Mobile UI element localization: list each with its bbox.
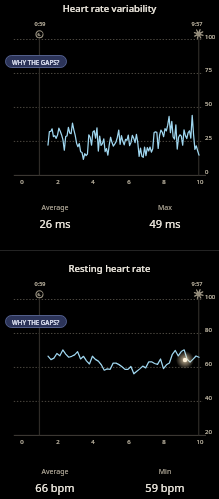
staticText: 26 ms (0, 216, 110, 231)
staticText: 75 (205, 66, 212, 74)
staticText: 25 (205, 134, 212, 142)
staticText: Average (0, 467, 110, 477)
staticText: 50 (205, 100, 212, 108)
staticText: 2 (49, 438, 67, 446)
staticText: 0 (13, 178, 31, 186)
staticText: Heart rate variability (0, 2, 219, 15)
staticText: 20 (205, 428, 212, 436)
staticText: WHY THE GAPS? (12, 318, 60, 326)
staticText: 10 (191, 178, 209, 186)
staticText: Average (0, 203, 110, 213)
staticText: 66 bpm (0, 480, 110, 495)
staticText: 8 (155, 438, 173, 446)
staticText: 8 (155, 178, 173, 186)
staticText: 0:59 (30, 20, 50, 27)
staticText: 0 (13, 438, 31, 446)
staticText: Max (110, 203, 219, 213)
button[interactable]: WHY THE GAPS? (5, 55, 67, 68)
staticText: 4 (84, 178, 102, 186)
staticText: 40 (205, 394, 212, 402)
staticText: 100 (205, 33, 216, 41)
staticText: Min (110, 467, 219, 477)
staticText: 49 ms (110, 216, 219, 231)
staticText: 60 (205, 360, 212, 368)
staticText: WHY THE GAPS? (12, 58, 60, 66)
staticText: 100 (205, 293, 216, 301)
staticText: Resting heart rate (0, 262, 219, 275)
staticText: 2 (49, 178, 67, 186)
staticText: 9:57 (187, 20, 207, 27)
staticText: 6 (120, 178, 138, 186)
staticText: 0 (205, 168, 209, 176)
staticText: 10 (191, 438, 209, 446)
staticText: 0:59 (30, 280, 50, 287)
staticText: 4 (84, 438, 102, 446)
staticText: 80 (205, 326, 212, 334)
button[interactable]: WHY THE GAPS? (5, 315, 67, 328)
staticText: 6 (120, 438, 138, 446)
staticText: 9:57 (187, 280, 207, 287)
staticText: 59 bpm (110, 480, 219, 495)
